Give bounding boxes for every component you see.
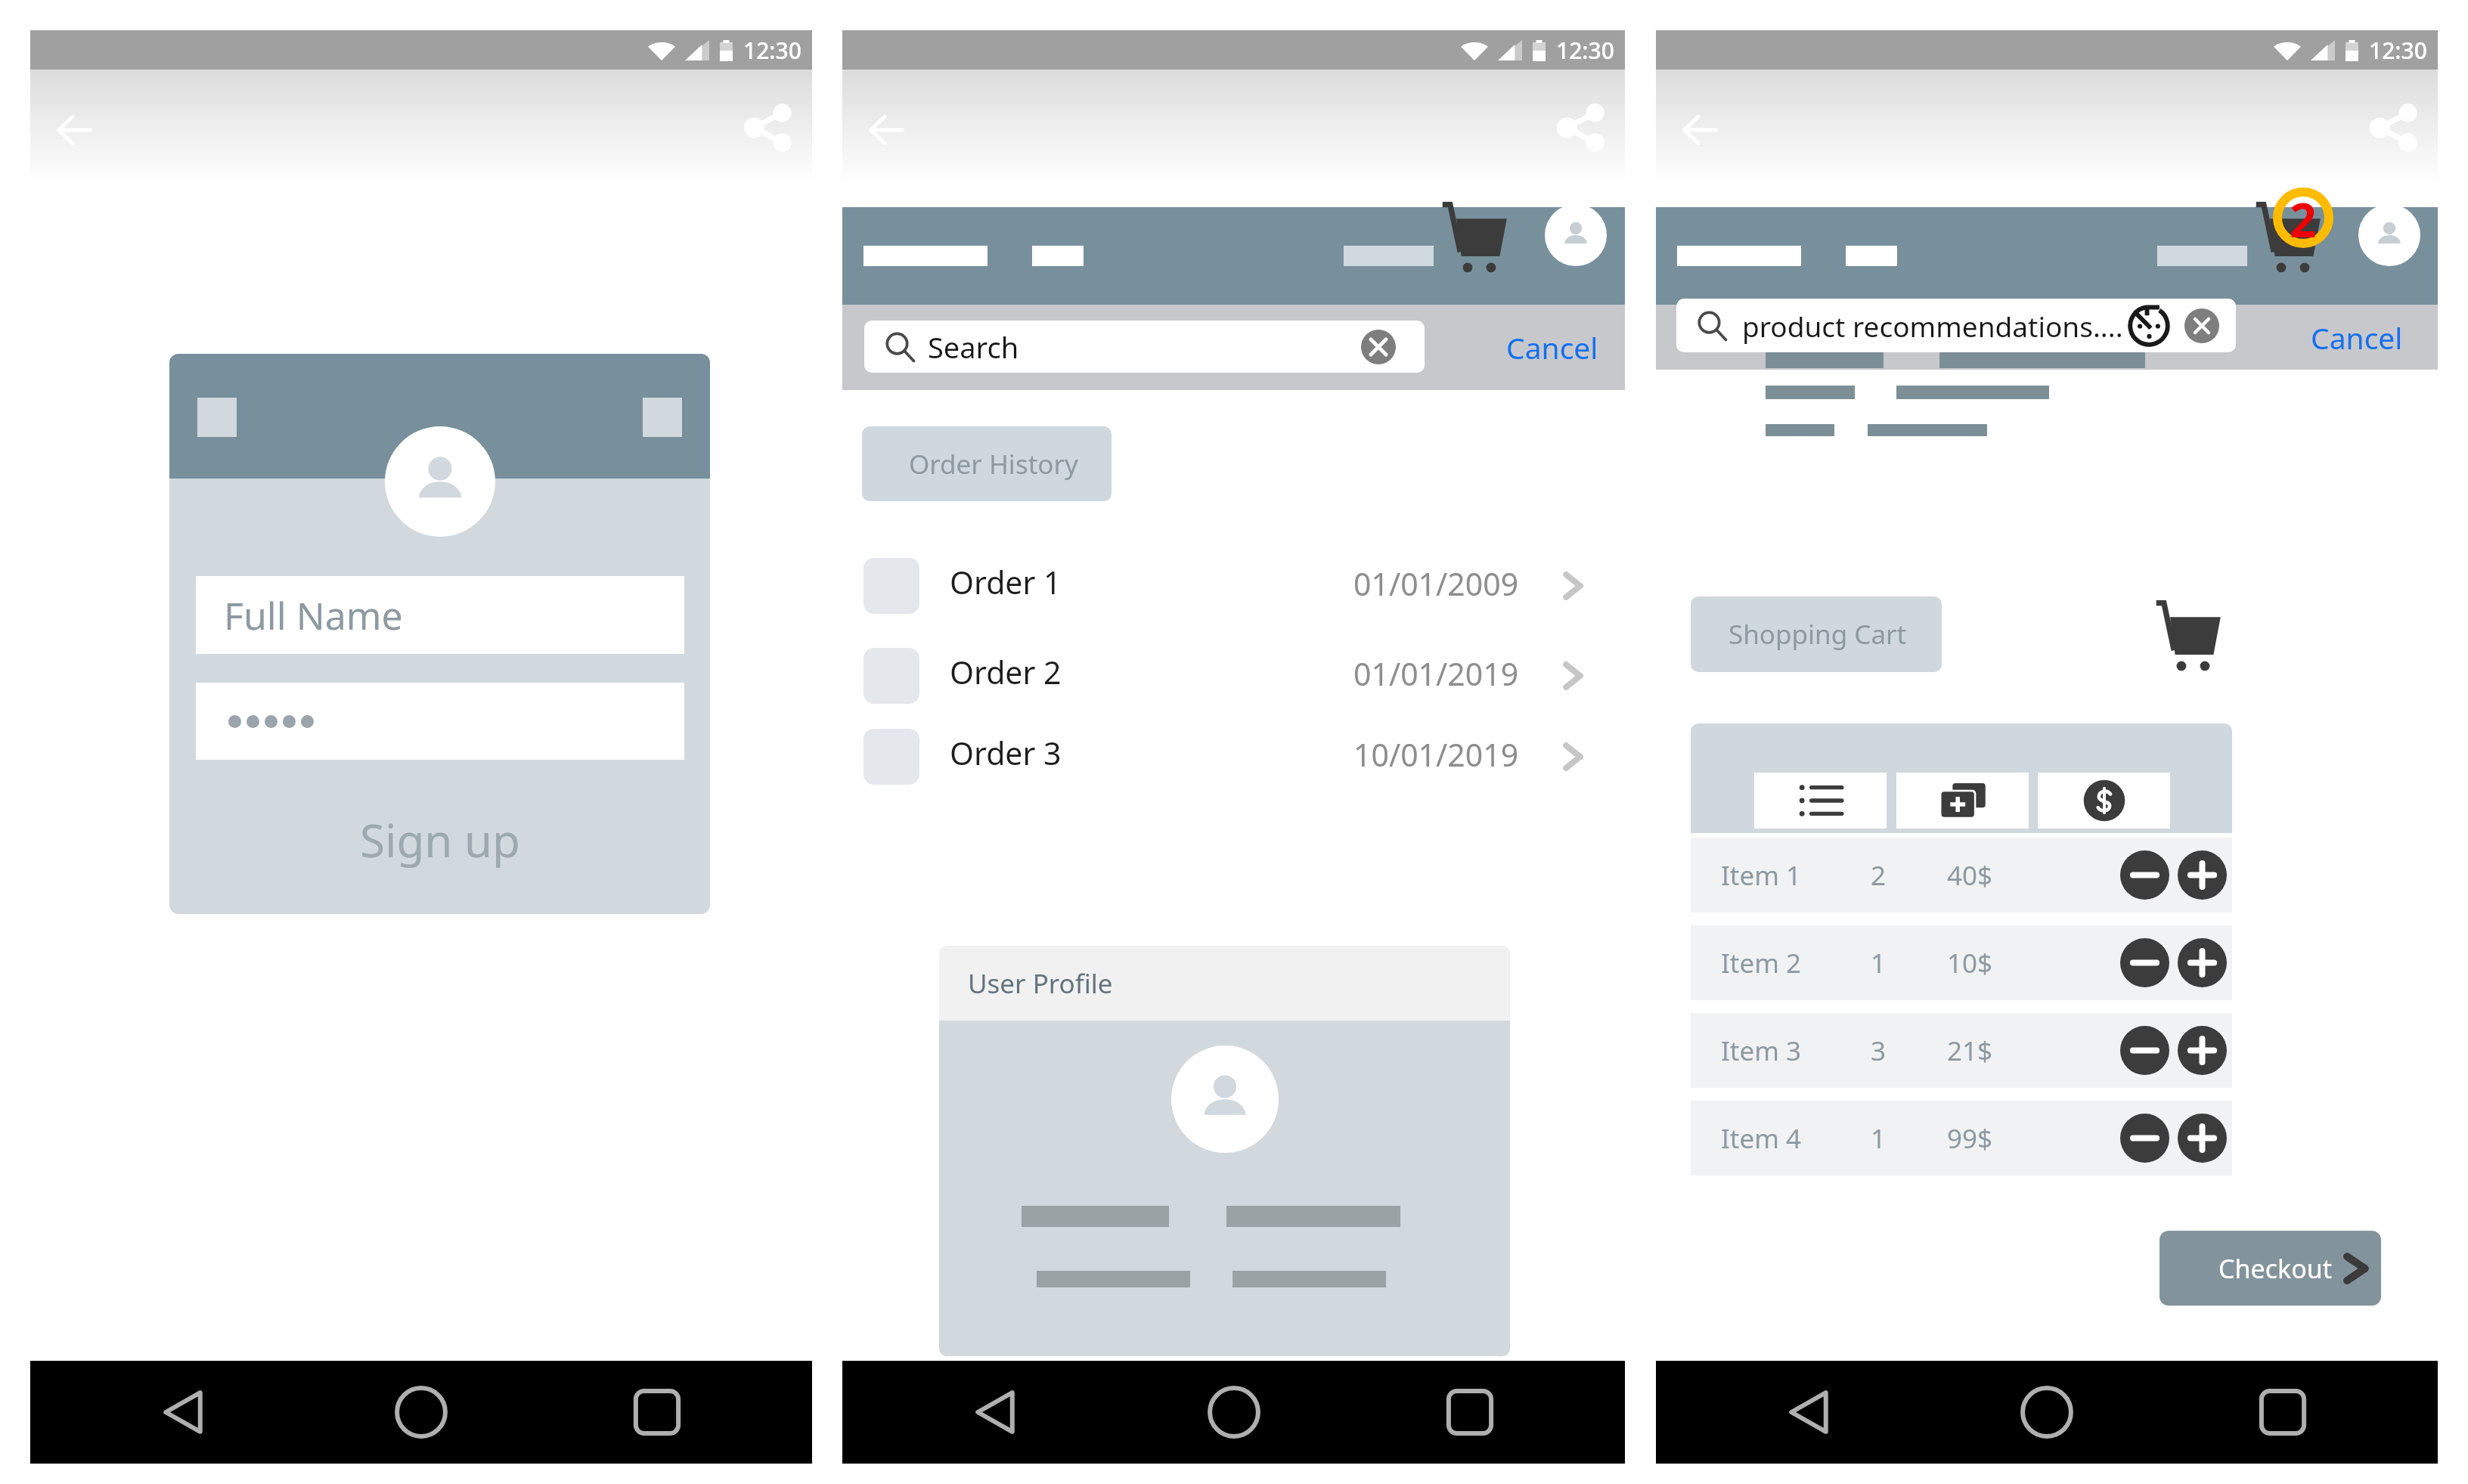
button[interactable]: Home bbox=[2018, 1383, 2076, 1441]
button[interactable]: Add item bbox=[1896, 773, 2029, 829]
button[interactable]: Item 3 bbox=[1691, 1013, 2232, 1088]
button[interactable]: Order History bbox=[862, 426, 1112, 501]
button[interactable]: Menu item bbox=[2157, 246, 2247, 266]
button[interactable]: Increase bbox=[2178, 1114, 2227, 1163]
button[interactable]: Share bbox=[744, 106, 792, 150]
button[interactable]: Cart bbox=[2153, 599, 2224, 677]
staticText: Item 4 bbox=[1721, 1120, 1802, 1157]
button[interactable]: Order 1 bbox=[842, 558, 1625, 614]
staticText: Cancel bbox=[2311, 318, 2403, 358]
button[interactable]: Cancel bbox=[1506, 305, 1598, 390]
staticText: 2 bbox=[2290, 187, 2317, 248]
staticText: 12:30 bbox=[1556, 35, 1614, 66]
button[interactable]: Decrease bbox=[2120, 1114, 2169, 1163]
button[interactable]: Checkout bbox=[2159, 1231, 2381, 1306]
button[interactable]: Order 3 bbox=[842, 729, 1625, 785]
button[interactable]: Share bbox=[2370, 106, 2418, 150]
staticText: 10/01/2019 bbox=[1353, 733, 1519, 776]
button[interactable]: Shopping Cart bbox=[1691, 596, 1942, 672]
button[interactable]: product recommendations.... bbox=[1676, 299, 2236, 352]
button[interactable]: Order list bbox=[1754, 773, 1887, 829]
button[interactable]: Sign up bbox=[169, 798, 710, 881]
staticText: Cancel bbox=[1506, 327, 1598, 367]
staticText: Item 1 bbox=[1721, 857, 1802, 894]
button[interactable]: Increase bbox=[2178, 850, 2227, 900]
staticText: Shopping Cart bbox=[1729, 616, 1907, 652]
button[interactable]: Decrease bbox=[2120, 938, 2169, 987]
staticText: Order 3 bbox=[950, 732, 1062, 774]
staticText: Full Name bbox=[224, 590, 403, 641]
staticText: 40$ bbox=[1947, 857, 1993, 894]
staticText: User Profile bbox=[968, 965, 1113, 1002]
button[interactable]: Clear bbox=[1361, 330, 1396, 364]
button[interactable]: Decrease bbox=[2120, 850, 2169, 900]
button[interactable]: Share bbox=[1557, 106, 1605, 150]
button[interactable]: Item 2 bbox=[1691, 925, 2232, 1000]
staticText: Item 2 bbox=[1721, 945, 1802, 981]
staticText: 01/01/2009 bbox=[1353, 562, 1519, 605]
staticText: Sign up bbox=[360, 809, 520, 871]
button[interactable]: Home bbox=[392, 1383, 450, 1441]
button[interactable]: Menu bbox=[863, 246, 988, 266]
button[interactable]: Home bbox=[1205, 1383, 1263, 1441]
button[interactable]: Increase bbox=[2178, 1026, 2227, 1075]
staticText: Order 1 bbox=[950, 561, 1062, 603]
button[interactable]: Item 1 bbox=[1691, 838, 2232, 912]
button[interactable]: Increase bbox=[2178, 938, 2227, 987]
button[interactable]: Search bbox=[864, 321, 1425, 373]
button[interactable]: Back bbox=[869, 114, 904, 146]
staticText: 3 bbox=[1871, 1033, 1887, 1069]
staticText: Checkout bbox=[2218, 1251, 2333, 1286]
button[interactable]: Cancel bbox=[2311, 305, 2403, 370]
staticText: 12:30 bbox=[743, 35, 801, 66]
button[interactable]: Clear bbox=[2184, 308, 2219, 343]
button[interactable]: Recents bbox=[1441, 1383, 1499, 1441]
staticText: product recommendations.... bbox=[1742, 307, 2123, 345]
button[interactable]: Cart bbox=[1439, 201, 1510, 278]
button[interactable]: Menu bbox=[1677, 246, 1801, 266]
button[interactable]: Account bbox=[1545, 204, 1607, 266]
button[interactable]: Recents bbox=[628, 1383, 686, 1441]
button[interactable]: Item 4 bbox=[1691, 1101, 2232, 1176]
staticText: 21$ bbox=[1947, 1033, 1993, 1069]
button[interactable]: Decrease bbox=[2120, 1026, 2169, 1075]
button[interactable]: Back bbox=[157, 1383, 214, 1441]
staticText: 12:30 bbox=[2369, 35, 2427, 66]
button[interactable]: Cart bbox=[2253, 201, 2324, 278]
staticText: Item 3 bbox=[1721, 1033, 1802, 1069]
other: Search bbox=[883, 330, 916, 364]
staticText: Order History bbox=[909, 446, 1078, 482]
button[interactable]: Back bbox=[1682, 114, 1717, 146]
staticText: 1 bbox=[1871, 1120, 1887, 1157]
staticText: 2 bbox=[1871, 857, 1887, 894]
button[interactable]: Back bbox=[57, 114, 91, 146]
staticText: 01/01/2019 bbox=[1353, 652, 1519, 695]
staticText: 1 bbox=[1871, 945, 1887, 981]
staticText: Search bbox=[928, 327, 1019, 367]
button[interactable]: Recents bbox=[2254, 1383, 2311, 1441]
staticText: Order 2 bbox=[950, 651, 1062, 693]
button[interactable]: Back bbox=[1782, 1383, 1840, 1441]
button[interactable]: Payment bbox=[2038, 773, 2170, 829]
staticText: 99$ bbox=[1947, 1120, 1993, 1157]
button[interactable]: Menu item bbox=[1032, 246, 1084, 266]
button[interactable]: Order 2 bbox=[842, 648, 1625, 704]
staticText: 10$ bbox=[1947, 945, 1993, 981]
button[interactable]: Account bbox=[2358, 204, 2420, 266]
button[interactable]: Back bbox=[969, 1383, 1026, 1441]
